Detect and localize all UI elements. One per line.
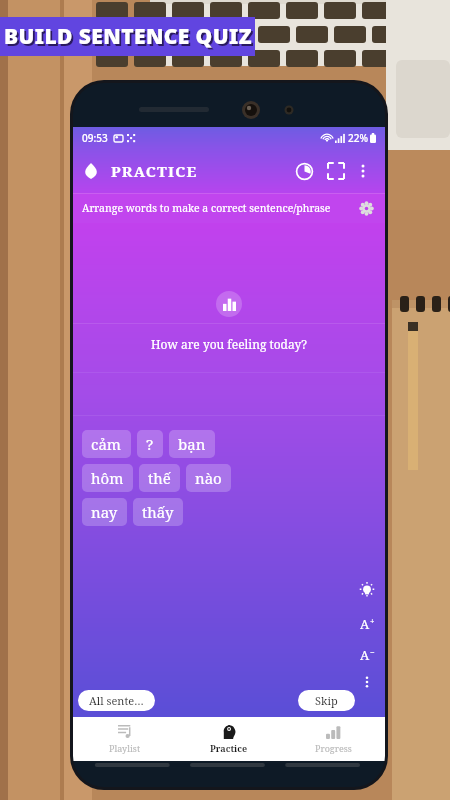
button[interactable]: Increase text size bbox=[355, 612, 379, 636]
staticText: hôm bbox=[91, 468, 124, 488]
button[interactable]: thế bbox=[139, 464, 180, 492]
button[interactable]: Progress bbox=[281, 717, 385, 761]
staticText: nay bbox=[91, 502, 118, 522]
button[interactable]: Decrease text size bbox=[355, 643, 379, 667]
button[interactable]: ? bbox=[137, 430, 163, 458]
button[interactable]: Skip bbox=[298, 690, 355, 711]
button[interactable]: nay bbox=[82, 498, 127, 526]
button[interactable]: Hint bbox=[354, 577, 380, 603]
button[interactable]: bạn bbox=[169, 430, 215, 458]
staticText: Practice bbox=[210, 742, 248, 754]
staticText: 09:53 bbox=[82, 131, 108, 145]
staticText: PRACTICE bbox=[111, 161, 198, 181]
staticText: A bbox=[360, 646, 370, 664]
staticText: All sente… bbox=[89, 693, 144, 708]
staticText: Skip bbox=[315, 693, 338, 708]
staticText: thấy bbox=[142, 502, 174, 522]
staticText: How are you feeling today? bbox=[151, 336, 307, 352]
staticText: Arrange words to make a correct sentence… bbox=[82, 201, 331, 215]
staticText: cảm bbox=[91, 434, 122, 454]
button[interactable]: Timer bbox=[289, 156, 319, 186]
button[interactable]: All sente… bbox=[78, 690, 155, 711]
staticText: + bbox=[370, 615, 375, 626]
button[interactable]: thấy bbox=[133, 498, 183, 526]
staticText: BUILD SENTENCE QUIZ bbox=[6, 24, 254, 53]
button[interactable]: Practice bbox=[177, 717, 281, 761]
staticText: Playlist bbox=[109, 742, 141, 754]
staticText: BUILD SENTENCE QUIZ bbox=[4, 22, 252, 51]
staticText: Progress bbox=[315, 742, 352, 754]
button[interactable]: Settings bbox=[356, 198, 376, 218]
button[interactable]: Fullscreen bbox=[321, 156, 351, 186]
staticText: ? bbox=[146, 434, 154, 454]
staticText: 22% bbox=[348, 131, 368, 145]
button[interactable]: hôm bbox=[82, 464, 133, 492]
button[interactable]: More bbox=[356, 671, 378, 693]
button[interactable]: Playlist bbox=[73, 717, 177, 761]
staticText: − bbox=[370, 646, 375, 657]
staticText: A bbox=[360, 615, 370, 633]
staticText: bạn bbox=[178, 434, 206, 454]
button[interactable]: nào bbox=[186, 464, 231, 492]
staticText: nào bbox=[195, 468, 222, 488]
button[interactable]: cảm bbox=[82, 430, 131, 458]
button[interactable]: More options bbox=[351, 159, 375, 183]
staticText: thế bbox=[148, 468, 171, 488]
